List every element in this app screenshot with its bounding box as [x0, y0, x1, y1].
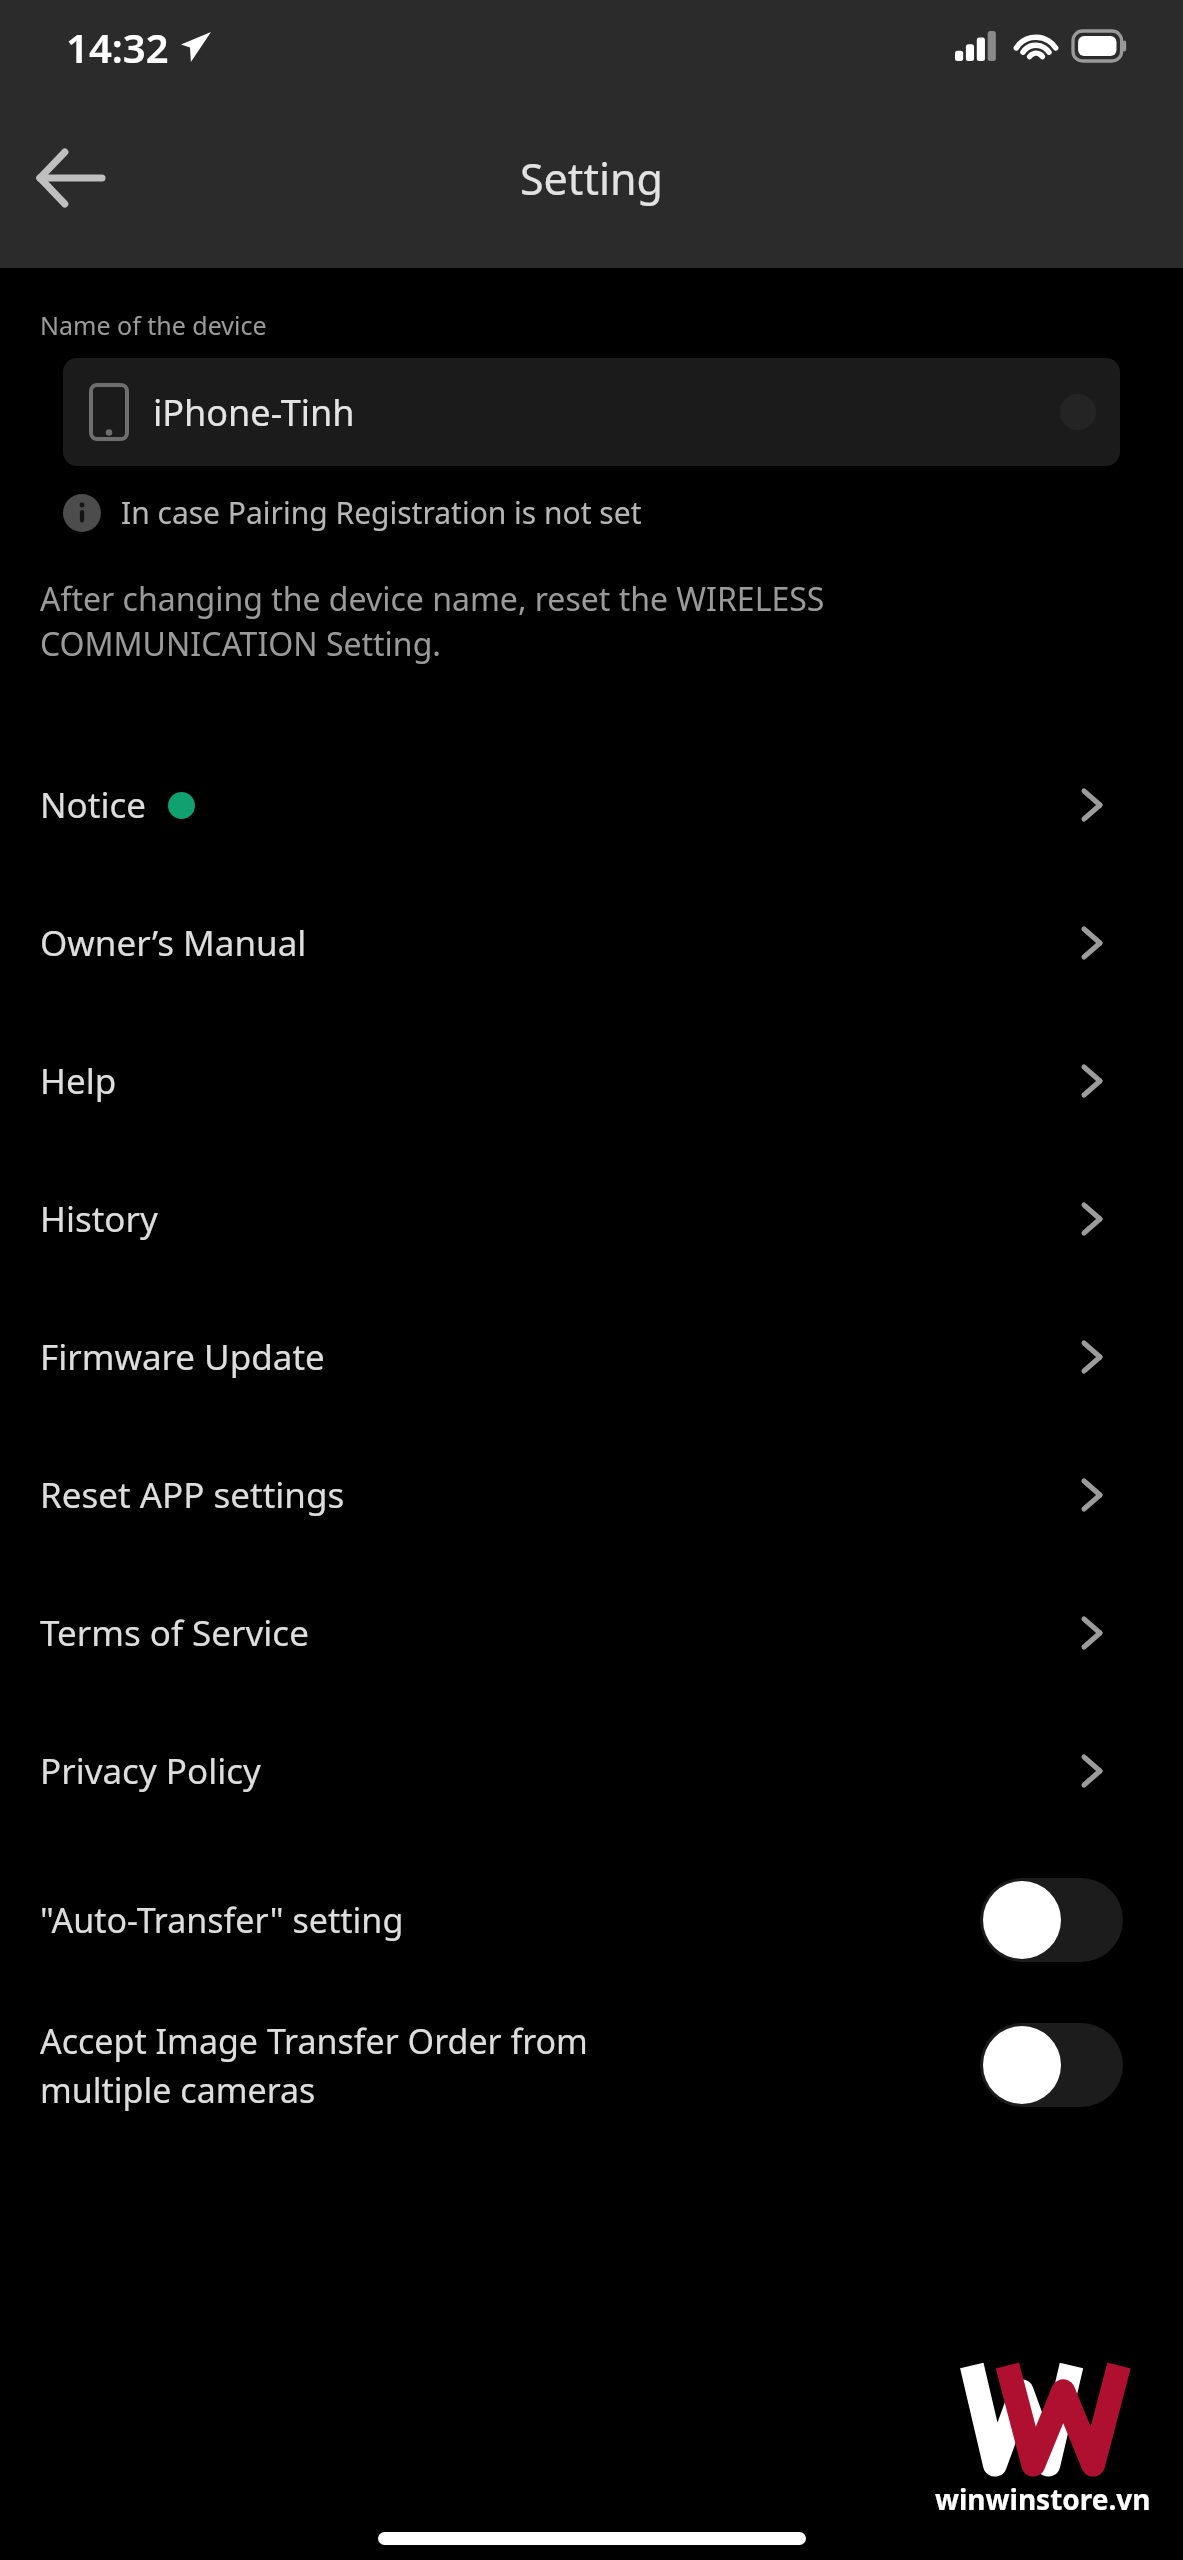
staticText: Accept Image Transfer Order from multipl… [40, 2018, 588, 2113]
staticText: History [40, 1195, 158, 1243]
staticText: iPhone-Tinh [153, 388, 355, 437]
button[interactable]: Reset APP settings [0, 1426, 1183, 1564]
button[interactable]: Owner’s Manual [0, 874, 1183, 1012]
staticText: Owner’s Manual [40, 919, 307, 967]
button[interactable]: "Auto-Transfer" setting [980, 1878, 1123, 1962]
button[interactable]: Help [0, 1012, 1183, 1150]
staticText: Help [40, 1057, 117, 1105]
staticText: "Auto-Transfer" setting [40, 1897, 404, 1943]
button[interactable]: Privacy Policy [0, 1702, 1183, 1840]
button[interactable]: Accept Image Transfer Order from multipl… [980, 2023, 1123, 2107]
staticText: Terms of Service [40, 1609, 309, 1657]
staticText: Reset APP settings [40, 1471, 345, 1519]
staticText: After changing the device name, reset th… [40, 577, 825, 666]
button[interactable]: iPhone-Tinh [63, 358, 1120, 466]
staticText: winwinstore.vn [935, 2480, 1151, 2518]
button[interactable]: History [0, 1150, 1183, 1288]
staticText: Firmware Update [40, 1333, 325, 1381]
button[interactable]: Notice [0, 736, 1183, 874]
staticText: Notice [40, 781, 146, 829]
staticText: In case Pairing Registration is not set [121, 492, 642, 533]
staticText: 14:32 [66, 20, 169, 74]
staticText: Setting [520, 149, 664, 208]
button[interactable]: Back [20, 128, 120, 228]
button[interactable]: Terms of Service [0, 1564, 1183, 1702]
button[interactable]: Firmware Update [0, 1288, 1183, 1426]
button[interactable]: Clear [1060, 394, 1096, 430]
staticText: Privacy Policy [40, 1747, 261, 1795]
staticText: Name of the device [40, 308, 267, 342]
